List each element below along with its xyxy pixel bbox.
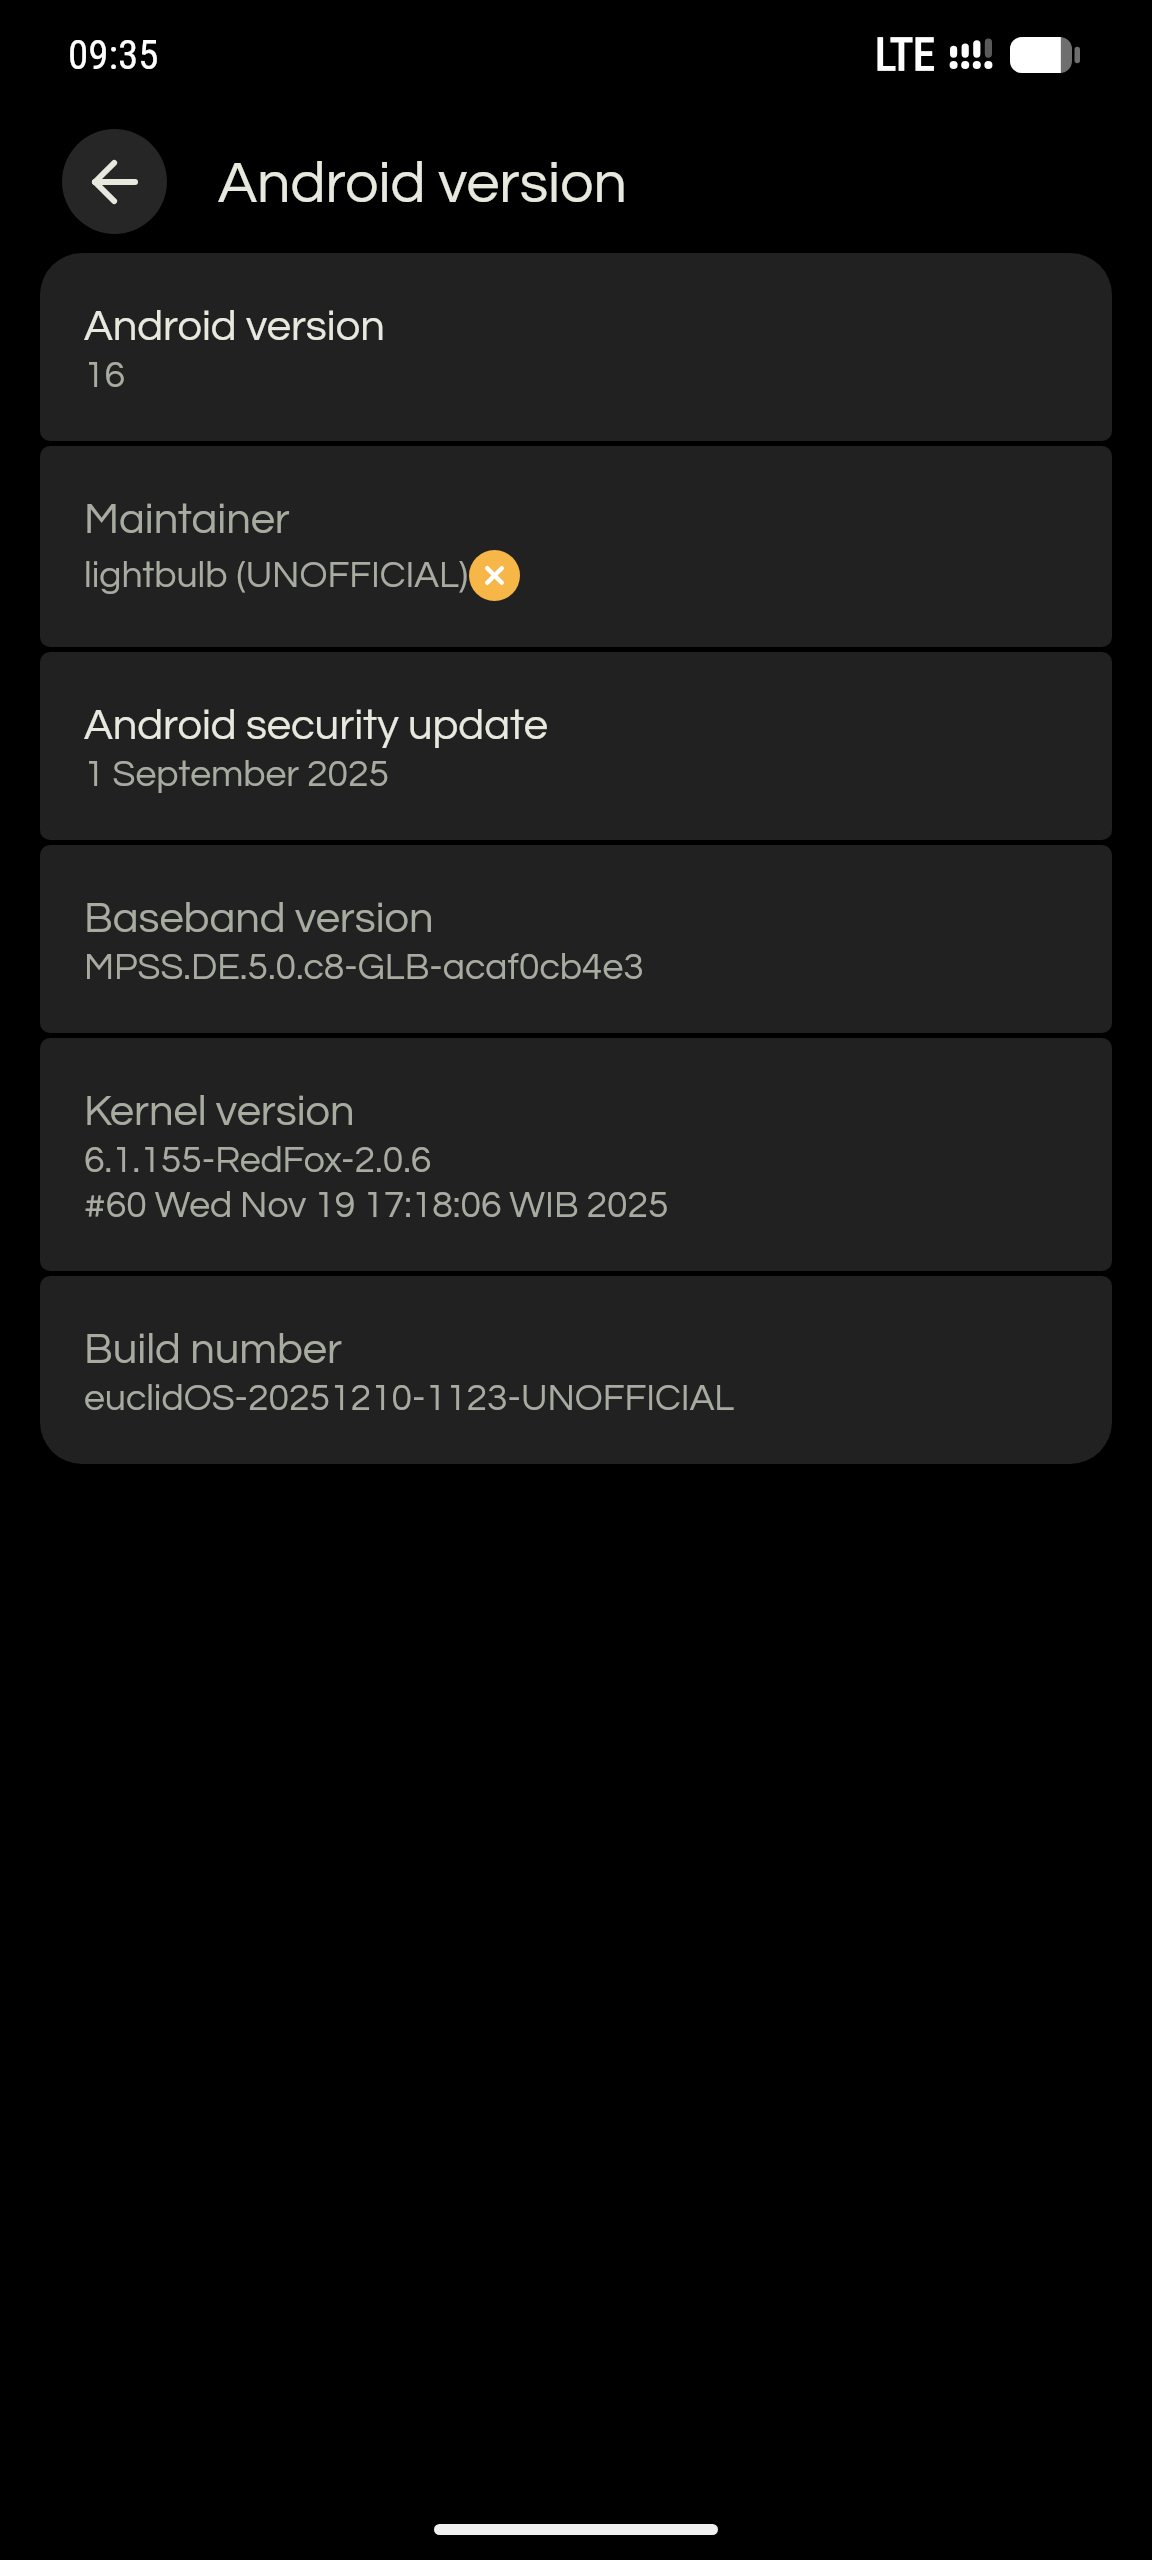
staticText: Android version [84, 304, 385, 349]
staticText: 1 September 2025 [84, 755, 390, 793]
button[interactable]: Kernel version [40, 1038, 1112, 1271]
staticText: 16 [84, 356, 126, 394]
staticText: LTE [875, 29, 935, 81]
staticText: Baseband version [84, 896, 434, 941]
staticText: Android security update [84, 703, 548, 748]
button[interactable]: Android security update [40, 652, 1112, 840]
button[interactable]: Android version [40, 253, 1112, 441]
staticText: 6.1.155-RedFox-2.0.6 [84, 1141, 432, 1179]
staticText: 09:35 [68, 31, 159, 79]
staticText: Build number [84, 1327, 342, 1372]
staticText: euclidOS-20251210-1123-UNOFFICIAL [84, 1379, 735, 1417]
button[interactable]: Baseband version [40, 845, 1112, 1033]
other: Unofficial build [469, 550, 520, 601]
staticText: Maintainer [84, 497, 290, 542]
button[interactable]: Build number [40, 1276, 1112, 1464]
button[interactable]: Maintainer [40, 446, 1112, 647]
staticText: lightbulb (UNOFFICIAL) [84, 556, 469, 594]
staticText: #60 Wed Nov 19 17:18:06 WIB 2025 [84, 1186, 669, 1224]
staticText: Android version [218, 154, 627, 215]
button[interactable]: Back [62, 129, 167, 234]
staticText: MPSS.DE.5.0.c8-GLB-acaf0cb4e3 [84, 948, 644, 986]
staticText: Kernel version [84, 1089, 355, 1134]
